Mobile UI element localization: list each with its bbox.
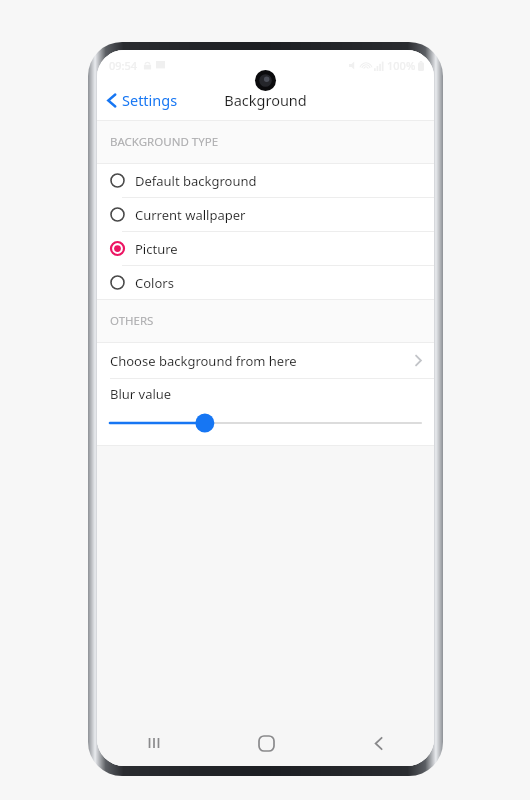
staticText: Current wallpaper [135,206,246,224]
button[interactable]: Default background [97,164,434,198]
button[interactable]: Settings [97,86,186,114]
button[interactable]: Choose background from here [97,343,434,379]
button[interactable]: Recents [97,720,210,766]
staticText: OTHERS [110,313,154,329]
staticText: Colors [135,274,174,292]
staticText: Default background [135,172,257,190]
button[interactable]: Blur value slider [110,409,421,437]
staticText: 09:54 [109,58,138,73]
staticText: Settings [122,90,178,110]
staticText: 100% [387,58,416,73]
staticText: Picture [135,240,178,258]
staticText: Choose background from here [110,352,297,370]
button[interactable]: Back [322,720,434,766]
button[interactable]: Picture [97,232,434,266]
staticText: Background [224,90,307,110]
staticText: BACKGROUND TYPE [110,134,219,150]
staticText: Blur value [110,385,172,403]
button[interactable]: Colors [97,266,434,299]
button[interactable]: Home [210,720,322,766]
button[interactable]: Current wallpaper [97,198,434,232]
